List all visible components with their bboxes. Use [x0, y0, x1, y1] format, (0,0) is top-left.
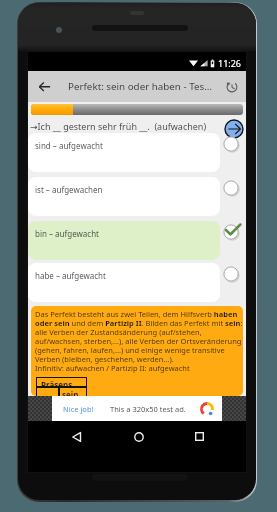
button[interactable]: Next question: [223, 118, 244, 139]
button[interactable]: bin – aufgewacht: [28, 221, 246, 260]
staticText: Präsens: [41, 379, 73, 387]
staticText: sein: [62, 389, 79, 396]
button[interactable]: habe – aufgewacht: [28, 263, 246, 302]
staticText: Perfekt: sein oder haben - Tes…: [68, 80, 212, 93]
button[interactable]: Back: [64, 424, 89, 449]
staticText: →Ich __ gestern sehr früh __. (aufwachen…: [30, 120, 207, 132]
staticText: This a 320x50 test ad.: [110, 404, 186, 414]
button[interactable]: Advertisement: [52, 396, 222, 421]
button[interactable]: sind – aufgewacht: [28, 133, 246, 172]
button[interactable]: Restart test: [218, 71, 246, 102]
button[interactable]: Recent apps: [187, 424, 212, 449]
staticText: 11:26: [218, 57, 242, 69]
staticText: sind – aufgewacht: [35, 140, 103, 151]
staticText: habe – aufgewacht: [35, 270, 106, 281]
button[interactable]: Home: [126, 424, 151, 449]
staticText: ist – aufgewachen: [35, 184, 103, 195]
staticText: bin – aufgewacht: [35, 228, 99, 239]
button[interactable]: Navigate up: [29, 71, 59, 102]
staticText: Nice job!: [63, 404, 94, 414]
staticText: Das Perfekt besteht aus zwei Teilen, dem…: [35, 309, 243, 374]
button[interactable]: ist – aufgewachen: [28, 177, 246, 216]
